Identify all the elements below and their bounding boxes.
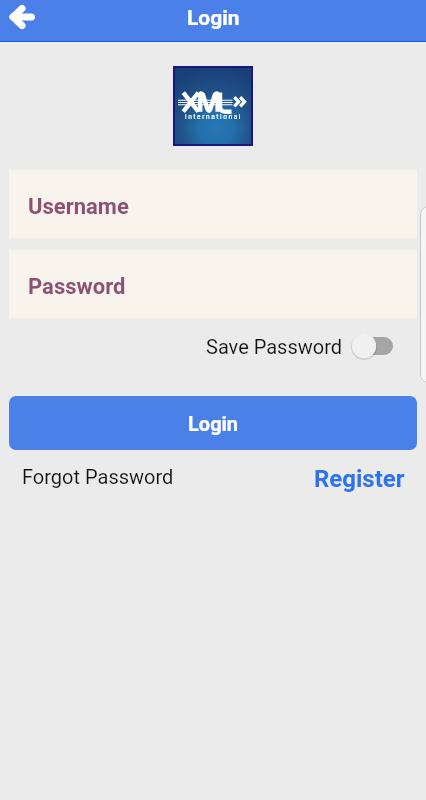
- staticText: Login: [188, 412, 239, 435]
- staticText: international: [185, 113, 242, 121]
- button[interactable]: Forgot Password: [14, 462, 182, 491]
- button[interactable]: Back: [3, 0, 41, 36]
- button[interactable]: Save Password: [200, 330, 400, 360]
- staticText: Forgot Password: [22, 465, 174, 488]
- staticText: Password: [28, 274, 126, 300]
- button[interactable]: Register: [306, 462, 413, 496]
- button[interactable]: Login: [9, 396, 417, 450]
- staticText: Login: [187, 6, 240, 31]
- staticText: Register: [314, 465, 405, 493]
- staticText: Save Password: [206, 335, 343, 358]
- staticText: Username: [28, 194, 129, 220]
- button[interactable]: Username: [9, 170, 417, 238]
- button[interactable]: Save Password toggle: [351, 332, 393, 359]
- button[interactable]: Password: [9, 250, 417, 318]
